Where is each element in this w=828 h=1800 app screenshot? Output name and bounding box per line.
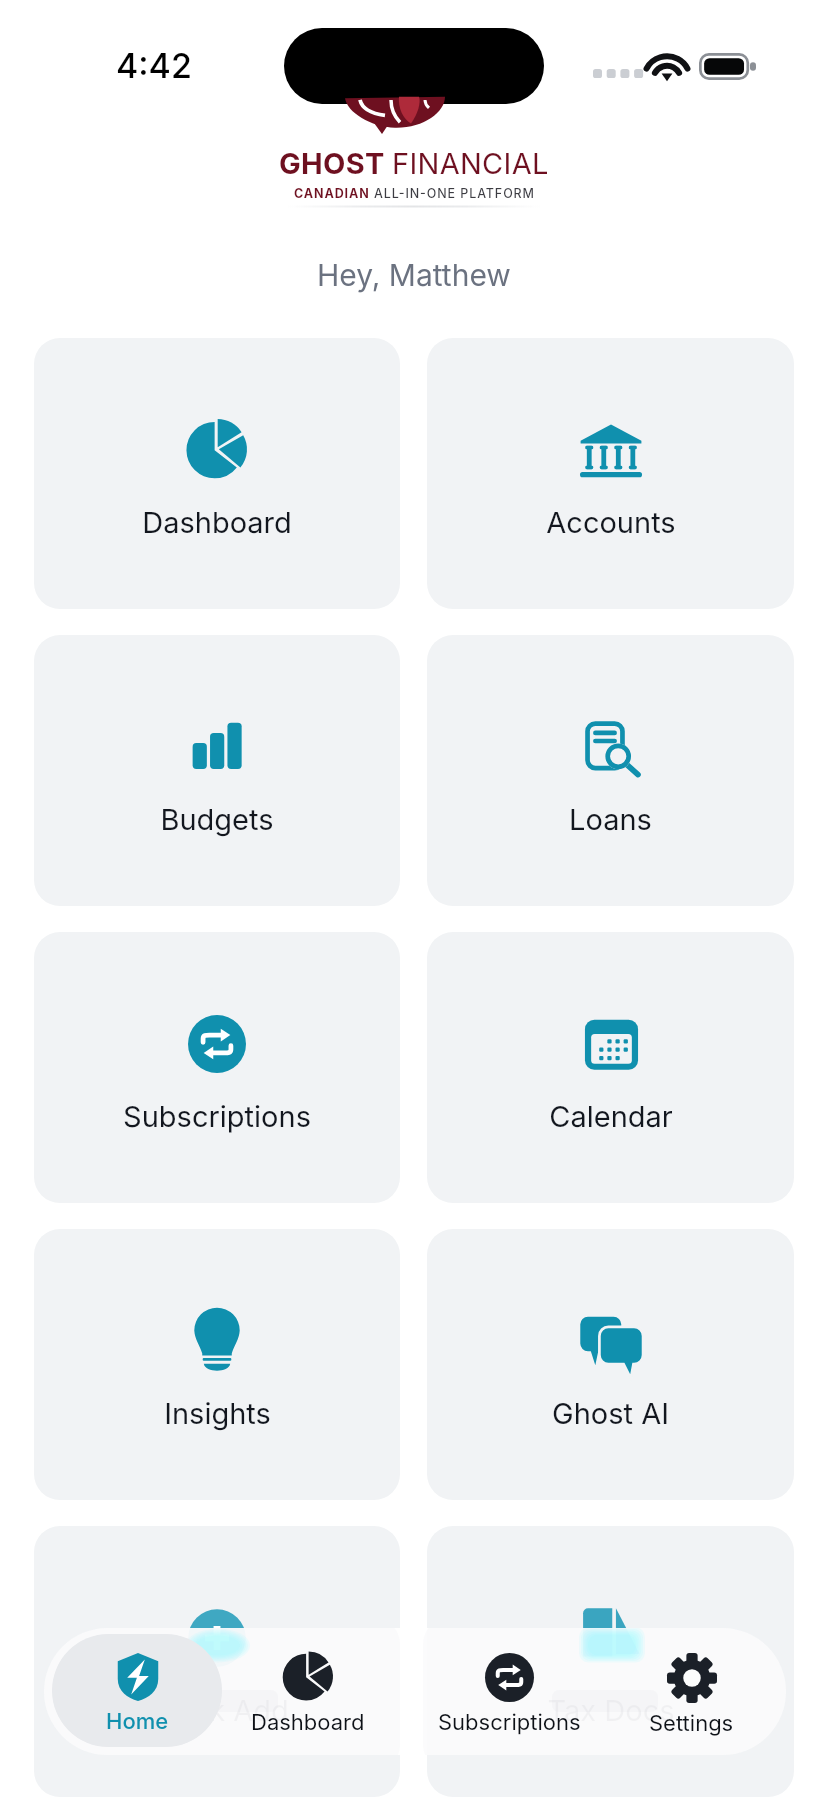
staticText: Hey, Matthew [317,257,511,293]
button[interactable]: Dashboard [218,1639,398,1744]
staticText: Home [106,1708,169,1735]
staticText: CANADIAN [294,186,374,201]
button[interactable]: Insights [34,1229,400,1500]
staticText: GHOST [279,146,392,181]
button[interactable]: Home [52,1634,222,1747]
button[interactable]: Quick Add [34,1526,400,1797]
staticText: 4:42 [116,45,192,86]
staticText: Dashboard [251,1709,365,1736]
staticText: Ghost AI [552,1396,669,1431]
staticText: Budgets [160,802,274,837]
staticText: Subscriptions [438,1709,581,1736]
button[interactable]: Settings [616,1639,766,1744]
button[interactable]: Budgets [34,635,400,906]
button[interactable]: Dashboard [34,338,400,609]
staticText: Tax Docs [547,1693,675,1728]
staticText: Quick Add [146,1693,289,1728]
button[interactable]: Tax Docs [427,1526,794,1797]
staticText: Dashboard [142,505,292,540]
button[interactable]: Loans [427,635,794,906]
button[interactable]: Subscriptions [399,1639,619,1744]
staticText: Settings [649,1710,734,1737]
button[interactable]: Calendar [427,932,794,1203]
staticText: Loans [569,802,652,837]
staticText: Insights [164,1396,271,1431]
staticText: ALL-IN-ONE PLATFORM [374,186,535,201]
staticText: Subscriptions [123,1099,311,1134]
button[interactable]: Accounts [427,338,794,609]
button[interactable]: Subscriptions [34,932,400,1203]
button[interactable]: Ghost AI [427,1229,794,1500]
staticText: Calendar [549,1099,673,1134]
staticText: Accounts [546,505,676,540]
staticText: FINANCIAL [392,146,549,181]
